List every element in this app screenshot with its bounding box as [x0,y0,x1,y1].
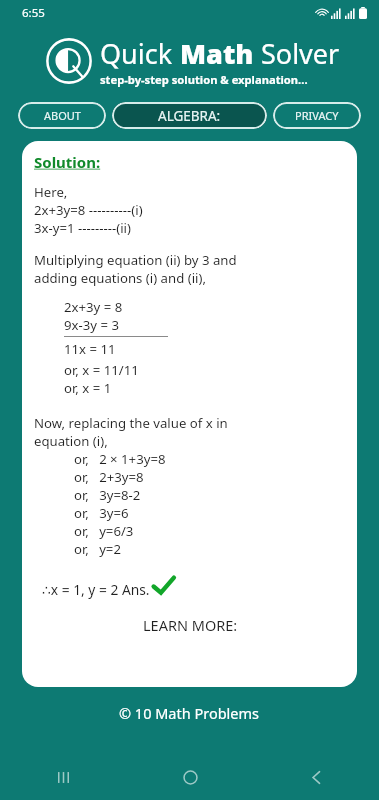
staticText: Now, replacing the value of x in [34,414,228,432]
staticText: 2x+3y=8 ----------(i) [34,201,143,219]
staticText: 9x-3y = 3 [64,316,119,334]
staticText: LEARN MORE: [143,615,238,635]
staticText: ALGEBRA: [158,107,221,125]
staticText: 11x = 11 [64,340,116,358]
staticText: equation (i), [34,432,108,450]
button[interactable]: Back [253,754,379,800]
staticText: ABOUT [44,108,81,123]
button[interactable]: PRIVACY [273,102,361,129]
staticText: 3x-y=1 ---------(ii) [34,219,131,237]
staticText: Quick [100,35,180,72]
staticText: or, 3y=6 [74,504,129,522]
staticText: or, y=2 [74,540,121,558]
staticText: or, x = 11/11 [64,361,139,379]
staticText: PRIVACY [295,108,339,123]
staticText: 6:55 [22,5,45,21]
staticText: or, 3y=8-2 [74,486,141,504]
staticText: Here, [34,183,68,201]
button[interactable]: LEARN MORE: [34,615,347,635]
staticText: Solution: [34,152,101,172]
button[interactable]: Recent apps [0,754,127,800]
staticText: or, x = 1 [64,379,112,397]
staticText: or, y=6/3 [74,522,134,540]
button[interactable]: ALGEBRA: [112,102,267,129]
button[interactable]: ABOUT [18,102,106,129]
staticText: Multiplying equation (ii) by 3 and [34,251,237,269]
staticText: 2x+3y = 8 [64,298,123,316]
staticText: adding equations (i) and (ii), [34,269,206,287]
staticText: Math [180,35,261,72]
staticText: or, 2 × 1+3y=8 [74,450,166,468]
staticText: or, 2+3y=8 [74,468,144,486]
staticText: Solver [261,35,340,72]
staticText: © 10 Math Problems [119,703,260,723]
button[interactable]: Home [127,754,253,800]
staticText: step-by-step solution & explanation... [100,72,308,87]
staticText: ∴x = 1, y = 2 Ans. [42,580,150,599]
